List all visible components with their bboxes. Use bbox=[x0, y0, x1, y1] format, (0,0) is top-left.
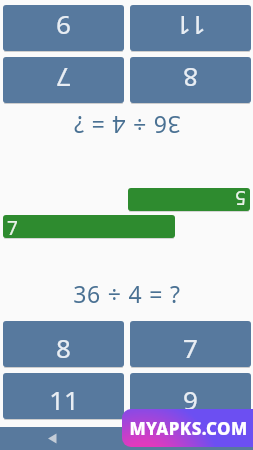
staticText: 36 ÷ 4 = ? bbox=[73, 114, 181, 141]
staticText: 5 bbox=[235, 188, 246, 211]
button[interactable]: 8 bbox=[130, 57, 251, 103]
staticText: 8 bbox=[183, 61, 198, 96]
staticText: 9 bbox=[56, 9, 71, 44]
staticText: MYAPKS.COM bbox=[129, 417, 248, 440]
staticText: 7 bbox=[183, 330, 198, 365]
button[interactable]: MYAPKS.COM bbox=[122, 409, 253, 447]
button[interactable]: 7 bbox=[130, 321, 251, 367]
button[interactable]: 9 bbox=[130, 373, 251, 419]
button[interactable]: 8 bbox=[3, 321, 124, 367]
staticText: 9 bbox=[183, 382, 198, 417]
button[interactable]: 11 bbox=[3, 373, 124, 419]
button[interactable] bbox=[34, 427, 70, 450]
staticText: 7 bbox=[56, 61, 71, 96]
button[interactable]: 7 bbox=[3, 57, 124, 103]
staticText: 8 bbox=[56, 330, 71, 365]
staticText: 11 bbox=[49, 382, 79, 417]
button[interactable]: 9 bbox=[3, 5, 124, 51]
staticText: 11 bbox=[176, 9, 206, 44]
staticText: 7 bbox=[7, 215, 18, 238]
button[interactable]: 11 bbox=[130, 5, 251, 51]
staticText: 36 ÷ 4 = ? bbox=[73, 278, 181, 305]
